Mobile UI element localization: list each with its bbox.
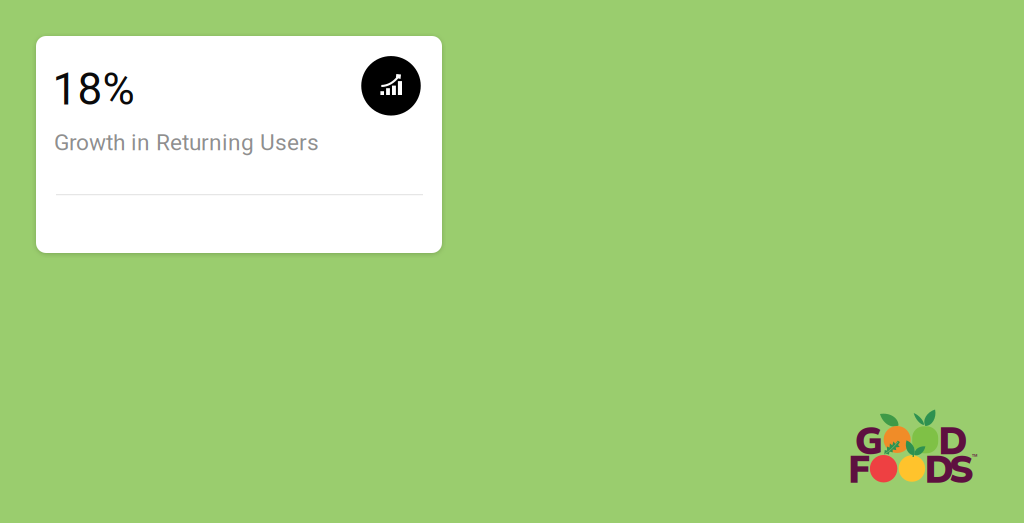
staticText: ™ (971, 452, 978, 464)
staticText: D (938, 417, 967, 464)
staticText: 18% (52, 64, 134, 115)
staticText: S (949, 445, 974, 492)
staticText: D (925, 445, 954, 492)
staticText: Growth in Returning Users (54, 129, 319, 156)
button[interactable]: Growth details (361, 56, 421, 115)
staticText: F (848, 445, 870, 492)
staticText: G (855, 417, 883, 464)
